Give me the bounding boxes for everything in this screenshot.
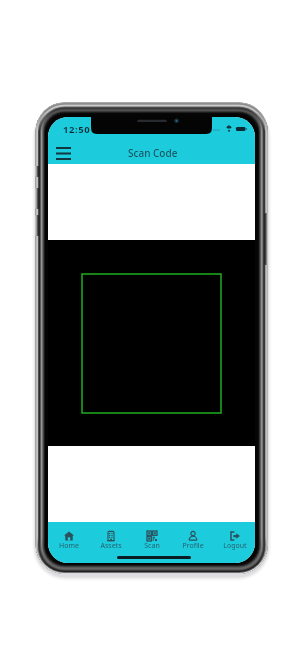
button[interactable]: Assets [90,522,131,563]
staticText: Profile [182,541,204,551]
staticText: Logout [223,541,247,551]
button[interactable]: Logout [214,522,255,563]
staticText: Scan [144,541,160,551]
button[interactable]: Open navigation menu [50,140,76,166]
button[interactable]: Profile [172,522,213,563]
staticText: 12:50 [63,123,91,136]
button[interactable]: Scan [131,522,172,563]
staticText: Assets [100,541,122,551]
button[interactable]: Home [48,522,89,563]
staticText: Home [59,541,79,551]
staticText: Scan Code [128,146,178,160]
